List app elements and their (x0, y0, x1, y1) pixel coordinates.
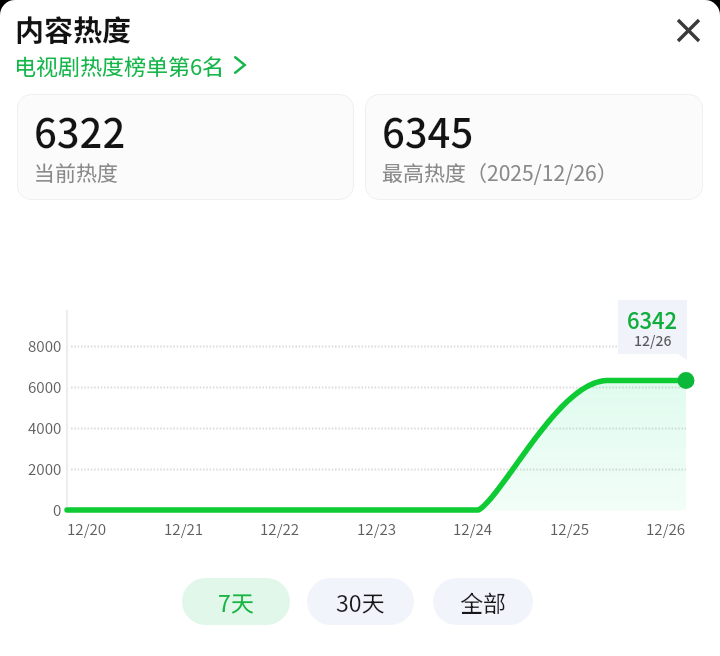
staticText: 2000 (28, 458, 62, 480)
staticText: 7天 (218, 585, 254, 618)
staticText: 全部 (460, 585, 506, 618)
staticText: 内容热度 (15, 7, 132, 49)
staticText: 12/24 (453, 518, 493, 540)
staticText: 电视剧热度榜单第6名 (14, 49, 225, 81)
staticText: 12/21 (164, 518, 204, 540)
staticText: 12/23 (357, 518, 397, 540)
button[interactable]: Close (660, 2, 716, 58)
button[interactable]: 6345 (365, 94, 703, 200)
button[interactable]: 6322 (17, 94, 354, 200)
button[interactable]: 7天 (182, 578, 290, 625)
staticText: 6000 (28, 376, 62, 398)
staticText: 4000 (28, 417, 62, 439)
staticText: 12/26 (646, 518, 686, 540)
button[interactable]: 全部 (433, 578, 533, 625)
staticText: 6322 (34, 102, 126, 160)
staticText: 6345 (382, 102, 474, 160)
staticText: 12/20 (67, 518, 107, 540)
staticText: 0 (53, 499, 62, 521)
staticText: 12/25 (550, 518, 590, 540)
staticText: 30天 (336, 585, 385, 618)
staticText: 12/26 (634, 330, 672, 350)
staticText: 12/22 (260, 518, 300, 540)
staticText: 当前热度 (34, 157, 118, 187)
button[interactable]: 30天 (307, 578, 414, 625)
staticText: 最高热度（2025/12/26） (382, 157, 618, 187)
staticText: 8000 (28, 335, 62, 357)
staticText: 6342 (627, 303, 678, 335)
button[interactable]: 电视剧热度榜单第6名 (14, 49, 246, 81)
